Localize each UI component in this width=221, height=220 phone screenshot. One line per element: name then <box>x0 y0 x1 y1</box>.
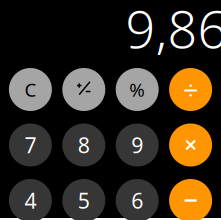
button[interactable]: 8 <box>62 123 105 166</box>
staticText: 5 <box>78 186 90 215</box>
staticText: 4 <box>24 186 36 215</box>
button[interactable]: 5 <box>62 179 105 220</box>
staticText: 6 <box>131 186 143 215</box>
button[interactable]: C <box>9 68 52 111</box>
staticText: 7 <box>24 131 36 159</box>
button[interactable]: 7 <box>9 123 52 166</box>
button[interactable]: % <box>116 68 159 111</box>
button[interactable]: 4 <box>9 179 52 220</box>
button[interactable]: Subtract <box>169 179 212 220</box>
button[interactable]: 9 <box>116 123 159 166</box>
button[interactable]: Multiply <box>169 123 212 166</box>
staticText: 9 <box>131 131 143 159</box>
staticText: 9,86 <box>125 0 221 63</box>
button[interactable]: Divide <box>169 68 212 111</box>
staticText: C <box>24 77 36 102</box>
staticText: 8 <box>78 131 90 159</box>
button[interactable]: 6 <box>116 179 159 220</box>
staticText: % <box>129 77 145 102</box>
button[interactable]: Plus minus <box>62 68 105 111</box>
